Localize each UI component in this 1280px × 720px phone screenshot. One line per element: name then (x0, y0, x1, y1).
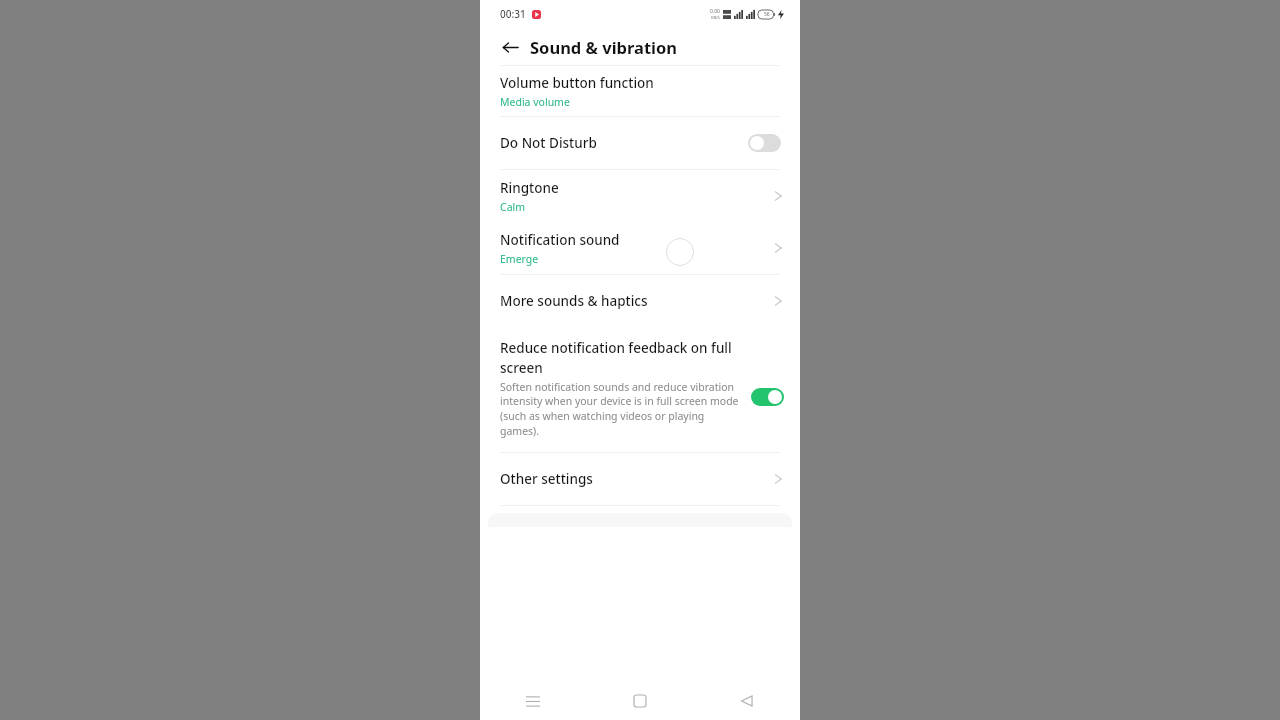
button[interactable]: Recent apps (480, 682, 586, 720)
staticText: KB/S (711, 15, 720, 20)
staticText: Soften notification sounds and reduce vi… (500, 380, 745, 438)
button[interactable]: Ringtone (480, 170, 800, 222)
button[interactable]: Reduce notification feedback on full scr… (480, 327, 800, 452)
staticText: 00:31 (500, 7, 526, 21)
staticText: Ringtone (500, 179, 559, 197)
staticText: Sound & vibration (530, 36, 678, 58)
staticText: 0.00 (710, 8, 720, 15)
button[interactable]: Home (586, 682, 693, 720)
staticText: Emerge (500, 252, 539, 266)
button[interactable]: Back (693, 682, 800, 720)
staticText: Notification sound (500, 231, 620, 249)
staticText: Other settings (500, 470, 593, 488)
button[interactable]: Do Not Disturb toggle (748, 134, 781, 152)
staticText: More sounds & haptics (500, 292, 648, 310)
staticText: Calm (500, 200, 526, 214)
staticText: Media volume (500, 95, 570, 109)
button[interactable]: Back (496, 33, 524, 61)
button[interactable]: Volume button function (480, 66, 800, 116)
button[interactable]: Reduce notification feedback toggle (751, 388, 784, 406)
button[interactable]: More sounds & haptics (480, 275, 800, 327)
button[interactable]: Other settings (480, 453, 800, 505)
button[interactable]: Do Not Disturb (480, 117, 800, 169)
staticText: Volume button function (500, 74, 654, 92)
staticText: 56 (764, 11, 770, 18)
staticText: Do Not Disturb (500, 134, 597, 152)
staticText: Reduce notification feedback on full scr… (500, 339, 745, 377)
button[interactable]: Notification sound (480, 222, 800, 274)
